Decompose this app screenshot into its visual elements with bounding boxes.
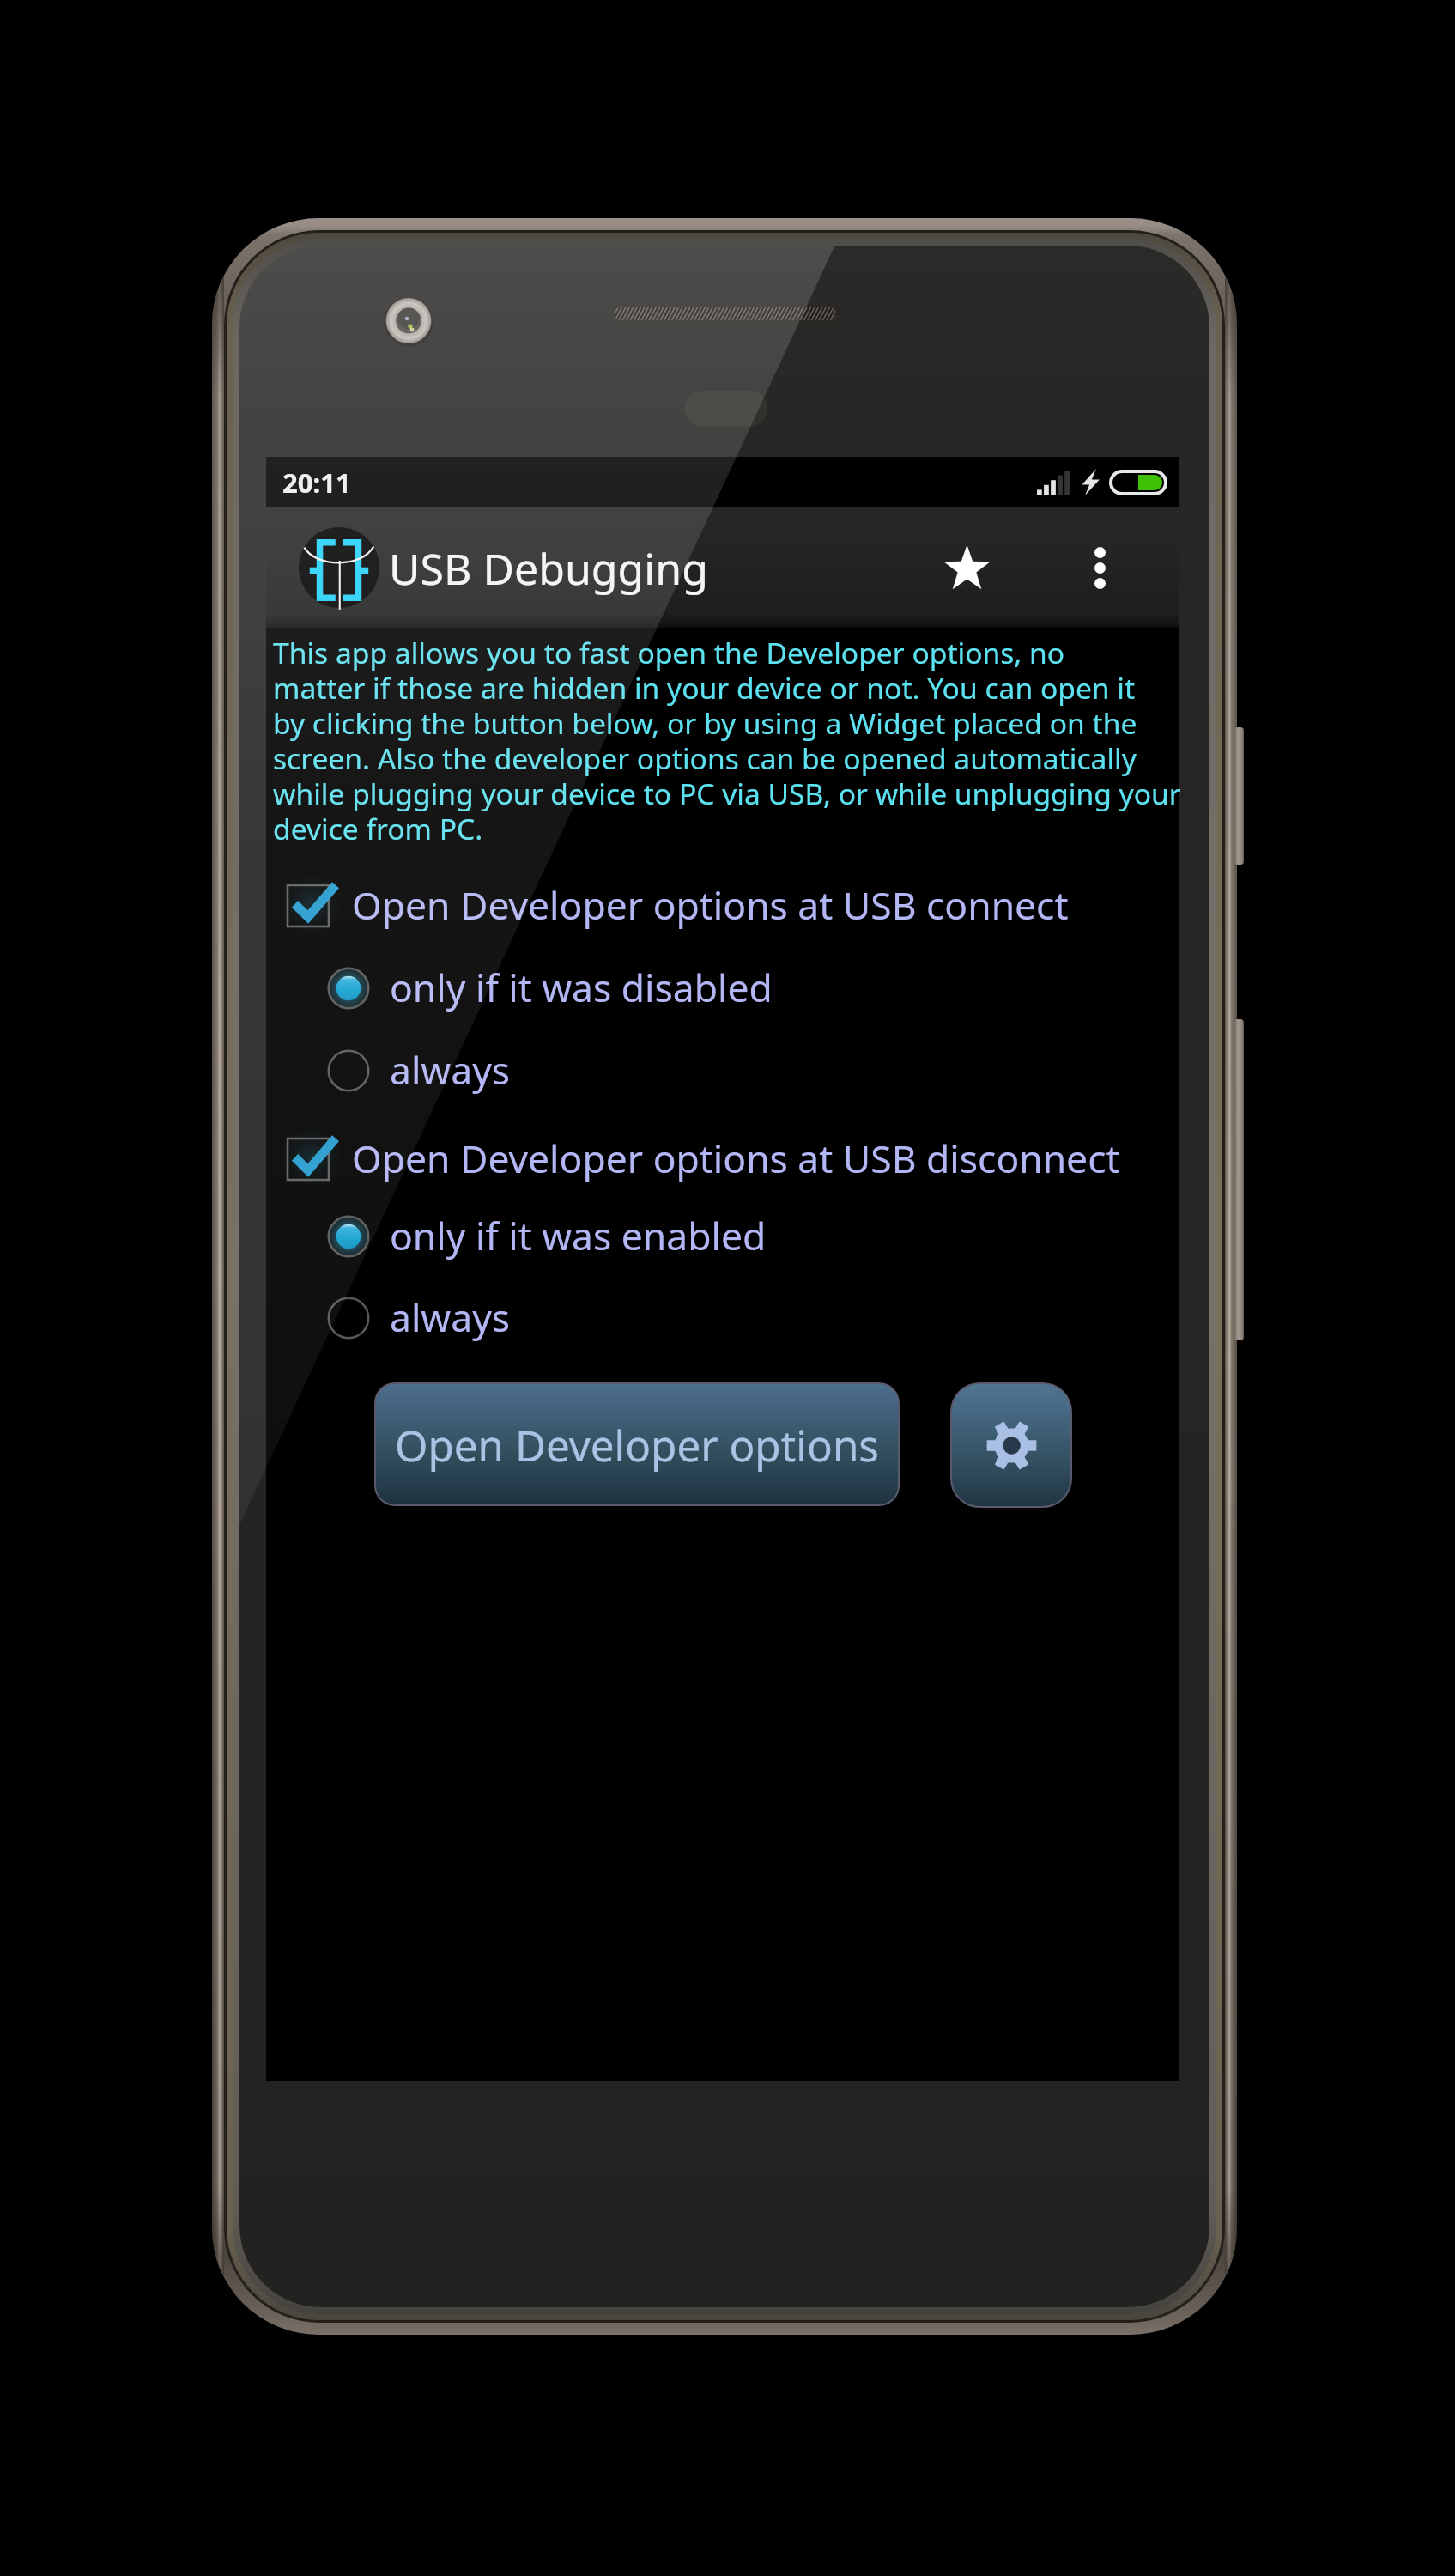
button[interactable]: only if it was disabled [266, 947, 1179, 1030]
staticText: only if it was enabled [390, 1210, 767, 1261]
staticText: USB Debugging [389, 539, 708, 598]
button[interactable]: only if it was enabled [266, 1195, 1179, 1278]
button[interactable]: Favourite [906, 507, 1027, 628]
staticText: Open Developer options at USB disconnect [352, 1133, 1120, 1184]
button[interactable]: always [266, 1030, 1179, 1112]
staticText: Open Developer options at USB connect [352, 879, 1069, 931]
staticText: only if it was disabled [390, 962, 773, 1013]
button[interactable]: Settings [952, 1384, 1070, 1506]
staticText: 20:11 [282, 465, 351, 501]
button[interactable]: Open Developer options [376, 1384, 898, 1504]
staticText: Open Developer options [395, 1416, 879, 1473]
button[interactable]: More options [1052, 507, 1147, 628]
staticText: always [390, 1291, 511, 1343]
staticText: always [390, 1044, 511, 1096]
button[interactable]: always [266, 1277, 1179, 1359]
button[interactable]: Open Developer options at USB connect [266, 865, 1179, 947]
staticText: This app allows you to fast open the Dev… [273, 633, 1181, 848]
button[interactable]: Open Developer options at USB disconnect [266, 1118, 1179, 1200]
